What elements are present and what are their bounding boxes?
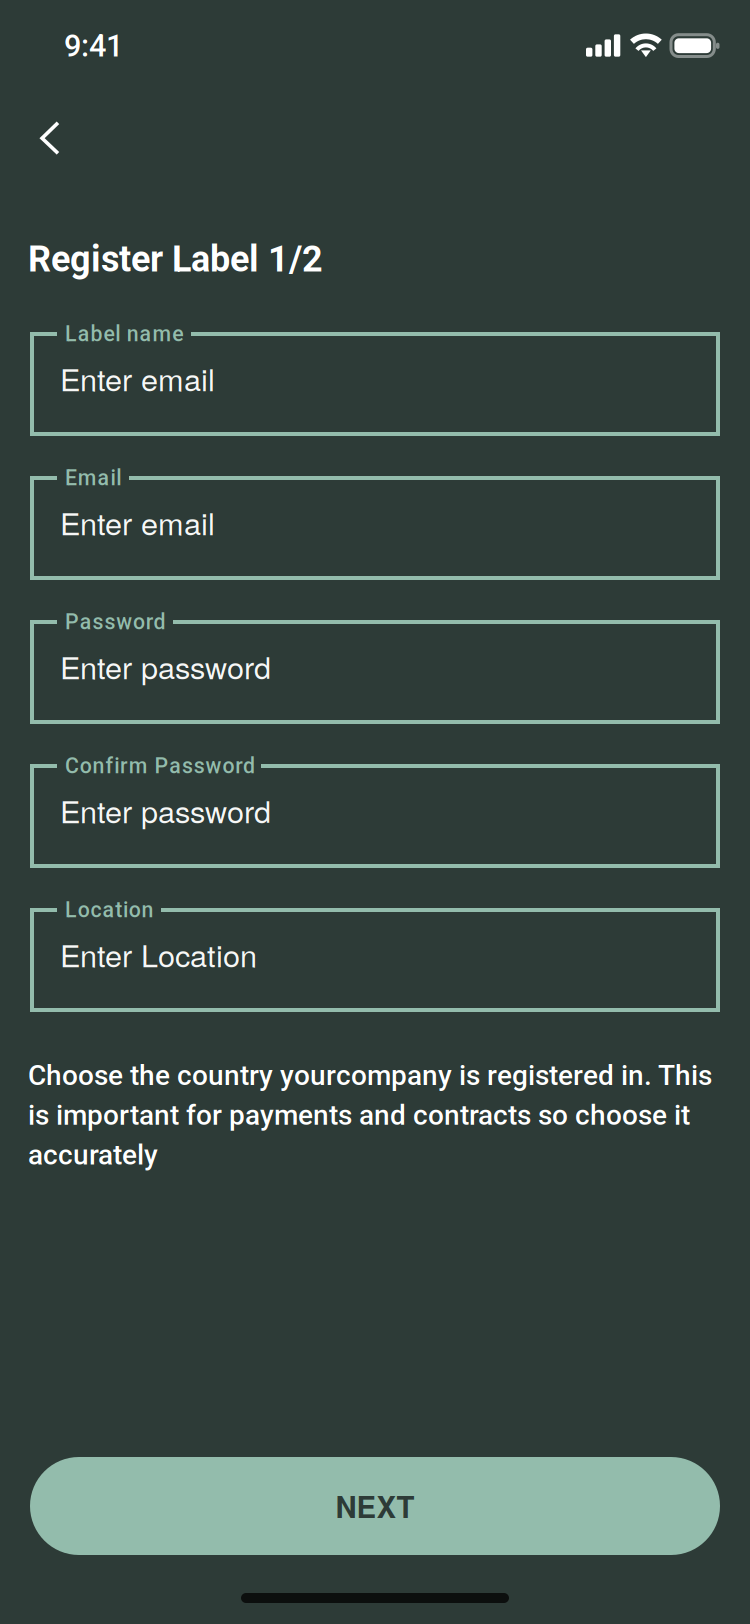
staticText: NEXT: [335, 1485, 414, 1527]
staticText: Enter email: [60, 356, 215, 400]
staticText: Password: [65, 609, 166, 634]
staticText: Location: [65, 897, 154, 922]
staticText: Email: [65, 465, 121, 490]
staticText: Register Label 1/2: [28, 238, 323, 280]
staticText: 9:41: [64, 28, 123, 64]
button[interactable]: Back: [11, 99, 89, 177]
staticText: Enter password: [60, 644, 271, 688]
staticText: Enter email: [60, 500, 215, 544]
button[interactable]: NEXT: [30, 1457, 720, 1555]
staticText: Enter Location: [60, 932, 257, 976]
staticText: Confirm Password: [65, 753, 255, 778]
staticText: Label name: [65, 321, 183, 346]
staticText: Enter password: [60, 788, 271, 832]
staticText: Choose the country yourcompany is regist…: [28, 1059, 712, 1171]
